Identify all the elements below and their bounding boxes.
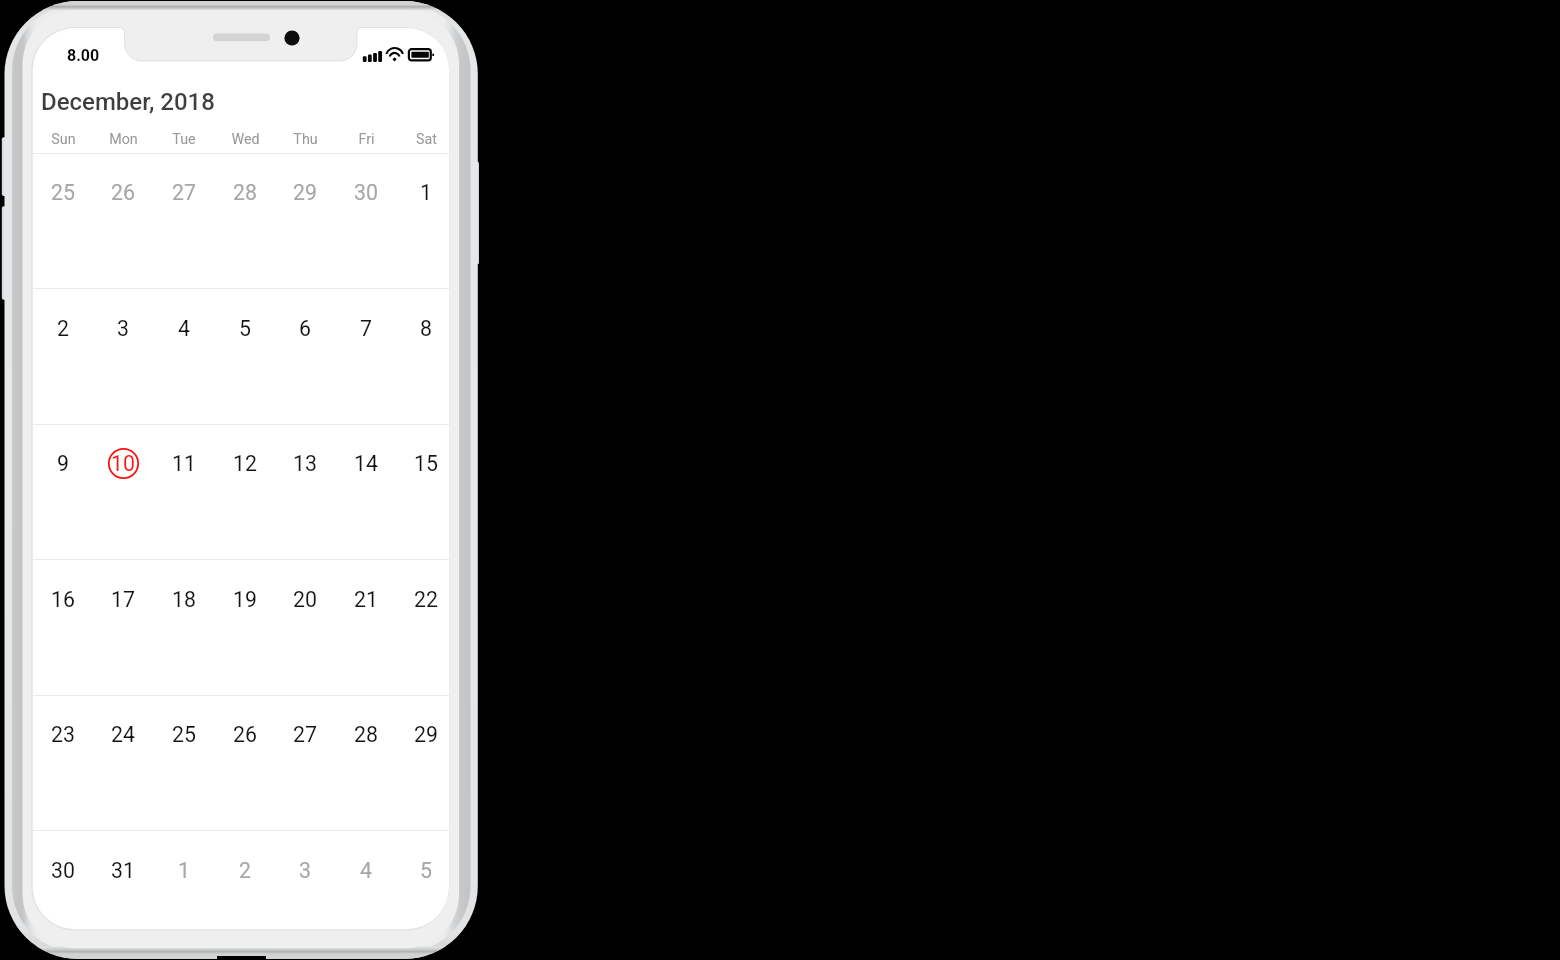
staticText: 27	[172, 180, 196, 205]
staticText: 4	[360, 858, 372, 883]
staticText: 30	[51, 858, 75, 883]
staticText: 5	[239, 316, 251, 341]
button[interactable]: 12	[217, 439, 273, 487]
staticText: 2	[239, 858, 251, 883]
staticText: Tue	[172, 131, 196, 148]
button[interactable]: 19	[217, 575, 273, 623]
button[interactable]: Sun	[35, 128, 91, 150]
button[interactable]: 24	[95, 710, 151, 758]
button[interactable]: Tue	[156, 128, 212, 150]
button[interactable]: 16	[35, 575, 91, 623]
staticText: 5	[420, 858, 432, 883]
staticText: 16	[51, 587, 75, 612]
button[interactable]: 31	[95, 846, 151, 894]
staticText: 27	[293, 722, 317, 747]
staticText: 3	[299, 858, 311, 883]
button[interactable]: 10	[95, 439, 151, 487]
button[interactable]: 14	[338, 439, 394, 487]
button[interactable]: Mon	[95, 128, 151, 150]
staticText: 8.00	[67, 46, 100, 65]
button[interactable]: 2	[217, 846, 273, 894]
button[interactable]: 13	[277, 439, 333, 487]
staticText: 11	[172, 451, 196, 476]
button[interactable]: 2	[35, 304, 91, 352]
button[interactable]: 9	[35, 439, 91, 487]
button[interactable]: December, 2018	[41, 88, 215, 116]
button[interactable]: Sat	[398, 128, 449, 150]
button[interactable]: Wed	[217, 128, 273, 150]
button[interactable]: 26	[95, 168, 151, 216]
button[interactable]: 29	[398, 710, 449, 758]
button[interactable]: 7	[338, 304, 394, 352]
staticText: 28	[354, 722, 378, 747]
button[interactable]: 30	[338, 168, 394, 216]
button[interactable]: 27	[277, 710, 333, 758]
staticText: 4	[178, 316, 190, 341]
staticText: 28	[233, 180, 257, 205]
staticText: 25	[51, 180, 75, 205]
staticText: 1	[420, 180, 432, 205]
staticText: 26	[111, 180, 135, 205]
button[interactable]: 27	[156, 168, 212, 216]
button[interactable]: 5	[217, 304, 273, 352]
staticText: Sat	[416, 131, 437, 148]
button[interactable]: 4	[156, 304, 212, 352]
staticText: 17	[111, 587, 135, 612]
staticText: 10	[111, 451, 135, 476]
button[interactable]: 22	[398, 575, 449, 623]
staticText: 19	[233, 587, 257, 612]
button[interactable]: 18	[156, 575, 212, 623]
button[interactable]: 11	[156, 439, 212, 487]
button[interactable]: 23	[35, 710, 91, 758]
staticText: 21	[354, 587, 378, 612]
button[interactable]: Fri	[338, 128, 394, 150]
staticText: 1	[178, 858, 190, 883]
button[interactable]: 28	[217, 168, 273, 216]
staticText: 30	[354, 180, 378, 205]
button[interactable]: 3	[95, 304, 151, 352]
staticText: 7	[360, 316, 372, 341]
staticText: December, 2018	[41, 88, 215, 116]
staticText: 3	[117, 316, 129, 341]
button[interactable]: 15	[398, 439, 449, 487]
button[interactable]: 17	[95, 575, 151, 623]
staticText: Thu	[293, 131, 318, 148]
button[interactable]: 1	[398, 168, 449, 216]
staticText: 26	[233, 722, 257, 747]
staticText: 20	[293, 587, 317, 612]
staticText: 2	[57, 316, 69, 341]
staticText: 13	[293, 451, 317, 476]
button[interactable]: 30	[35, 846, 91, 894]
button[interactable]: 5	[398, 846, 449, 894]
button[interactable]: 3	[277, 846, 333, 894]
button[interactable]: 28	[338, 710, 394, 758]
button[interactable]: 21	[338, 575, 394, 623]
staticText: Mon	[109, 131, 138, 148]
other: Signal, Wi-Fi and battery status	[359, 45, 437, 65]
staticText: 25	[172, 722, 196, 747]
button[interactable]: 8	[398, 304, 449, 352]
staticText: 22	[414, 587, 438, 612]
button[interactable]: 29	[277, 168, 333, 216]
staticText: 12	[233, 451, 257, 476]
staticText: 15	[414, 451, 438, 476]
staticText: 24	[111, 722, 135, 747]
staticText: 29	[414, 722, 438, 747]
staticText: 31	[111, 858, 135, 883]
button[interactable]: 1	[156, 846, 212, 894]
staticText: 23	[51, 722, 75, 747]
button[interactable]: 25	[35, 168, 91, 216]
staticText: 6	[299, 316, 311, 341]
button[interactable]: Thu	[277, 128, 333, 150]
staticText: 18	[172, 587, 196, 612]
button[interactable]: 4	[338, 846, 394, 894]
staticText: 14	[354, 451, 378, 476]
staticText: Sun	[51, 131, 76, 148]
button[interactable]: 26	[217, 710, 273, 758]
button[interactable]: 25	[156, 710, 212, 758]
staticText: 29	[293, 180, 317, 205]
button[interactable]: 20	[277, 575, 333, 623]
button[interactable]: 6	[277, 304, 333, 352]
staticText: 8	[420, 316, 432, 341]
staticText: Wed	[231, 131, 260, 148]
